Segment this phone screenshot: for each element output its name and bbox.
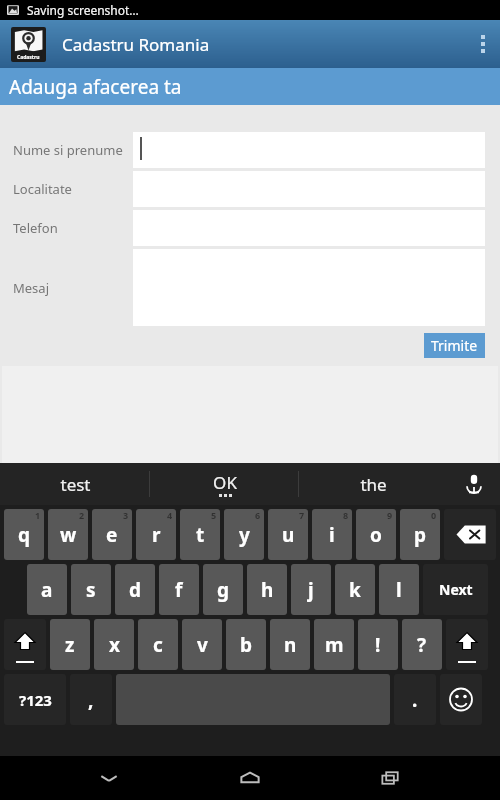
- button[interactable]: Shift: [4, 619, 46, 670]
- staticText: Telefon: [13, 219, 58, 237]
- button[interactable]: !: [358, 619, 398, 670]
- button[interactable]: Shift: [446, 619, 488, 670]
- button[interactable]: v: [182, 619, 222, 670]
- button[interactable]: Delete: [444, 509, 496, 560]
- button[interactable]: Home: [228, 756, 272, 800]
- button[interactable]: l: [379, 564, 419, 615]
- staticText: 9: [387, 509, 393, 521]
- staticText: d: [129, 577, 142, 603]
- button[interactable]: 7: [268, 509, 308, 560]
- staticText: g: [217, 577, 230, 603]
- button[interactable]: Trimite: [424, 333, 485, 358]
- button[interactable]: b: [226, 619, 266, 670]
- staticText: 7: [299, 509, 305, 521]
- staticText: Cadastru: [17, 54, 40, 61]
- staticText: OK: [213, 471, 237, 494]
- staticText: q: [18, 522, 31, 548]
- button[interactable]: 0: [400, 509, 440, 560]
- staticText: n: [284, 632, 297, 658]
- button[interactable]: h: [247, 564, 287, 615]
- button[interactable]: x: [94, 619, 134, 670]
- button[interactable]: ,: [70, 674, 112, 725]
- staticText: z: [65, 632, 75, 658]
- button[interactable]: 9: [356, 509, 396, 560]
- staticText: b: [240, 632, 253, 658]
- button[interactable]: Back: [87, 756, 131, 800]
- staticText: Saving screenshot…: [27, 2, 139, 18]
- button[interactable]: ?123: [4, 674, 66, 725]
- button[interactable]: Emoji: [440, 674, 482, 725]
- staticText: h: [261, 577, 274, 603]
- button[interactable]: .: [394, 674, 436, 725]
- button[interactable]: 1: [4, 509, 44, 560]
- staticText: y: [239, 522, 250, 548]
- button[interactable]: 5: [180, 509, 220, 560]
- button[interactable]: 6: [224, 509, 264, 560]
- button[interactable]: More options: [466, 20, 500, 68]
- staticText: x: [109, 632, 120, 658]
- staticText: m: [325, 632, 344, 658]
- button[interactable]: [133, 132, 485, 168]
- button[interactable]: test: [0, 463, 150, 505]
- staticText: j: [308, 577, 314, 603]
- staticText: 4: [167, 509, 173, 521]
- staticText: p: [414, 522, 427, 548]
- staticText: w: [60, 522, 77, 548]
- button[interactable]: Next: [423, 564, 488, 615]
- button[interactable]: Voice input: [448, 463, 500, 505]
- button[interactable]: n: [270, 619, 310, 670]
- button[interactable]: the: [299, 463, 448, 505]
- button[interactable]: g: [203, 564, 243, 615]
- staticText: 6: [255, 509, 261, 521]
- staticText: k: [349, 577, 361, 603]
- button[interactable]: f: [159, 564, 199, 615]
- staticText: f: [175, 577, 183, 603]
- staticText: !: [375, 632, 381, 658]
- button[interactable]: Recents: [369, 756, 413, 800]
- staticText: 5: [211, 509, 217, 521]
- staticText: ?: [417, 632, 427, 658]
- staticText: v: [197, 632, 208, 658]
- button[interactable]: ?: [402, 619, 442, 670]
- button[interactable]: j: [291, 564, 331, 615]
- staticText: a: [41, 577, 53, 603]
- button[interactable]: 4: [136, 509, 176, 560]
- button[interactable]: m: [314, 619, 354, 670]
- staticText: Next: [439, 580, 473, 599]
- staticText: Adauga afacerea ta: [9, 74, 182, 100]
- staticText: .: [412, 687, 418, 713]
- button[interactable]: 2: [48, 509, 88, 560]
- staticText: e: [106, 522, 118, 548]
- staticText: Mesaj: [13, 279, 49, 297]
- button[interactable]: OK: [150, 463, 299, 505]
- staticText: 8: [343, 509, 349, 521]
- button[interactable]: 3: [92, 509, 132, 560]
- staticText: c: [153, 632, 163, 658]
- staticText: 3: [123, 509, 129, 521]
- staticText: ?123: [19, 690, 52, 710]
- staticText: Cadastru Romania: [62, 33, 210, 56]
- staticText: u: [282, 522, 295, 548]
- button[interactable]: d: [115, 564, 155, 615]
- staticText: 0: [431, 509, 437, 521]
- staticText: r: [152, 522, 161, 548]
- staticText: t: [196, 522, 205, 548]
- button[interactable]: z: [50, 619, 90, 670]
- button[interactable]: a: [27, 564, 67, 615]
- staticText: 1: [35, 509, 41, 521]
- button[interactable]: s: [71, 564, 111, 615]
- button[interactable]: 8: [312, 509, 352, 560]
- staticText: Localitate: [13, 180, 72, 198]
- staticText: Trimite: [431, 336, 478, 355]
- staticText: l: [396, 577, 402, 603]
- staticText: Nume si prenume: [13, 141, 123, 159]
- button[interactable]: c: [138, 619, 178, 670]
- staticText: s: [86, 577, 96, 603]
- button[interactable]: k: [335, 564, 375, 615]
- staticText: ,: [88, 687, 94, 713]
- staticText: 2: [79, 509, 85, 521]
